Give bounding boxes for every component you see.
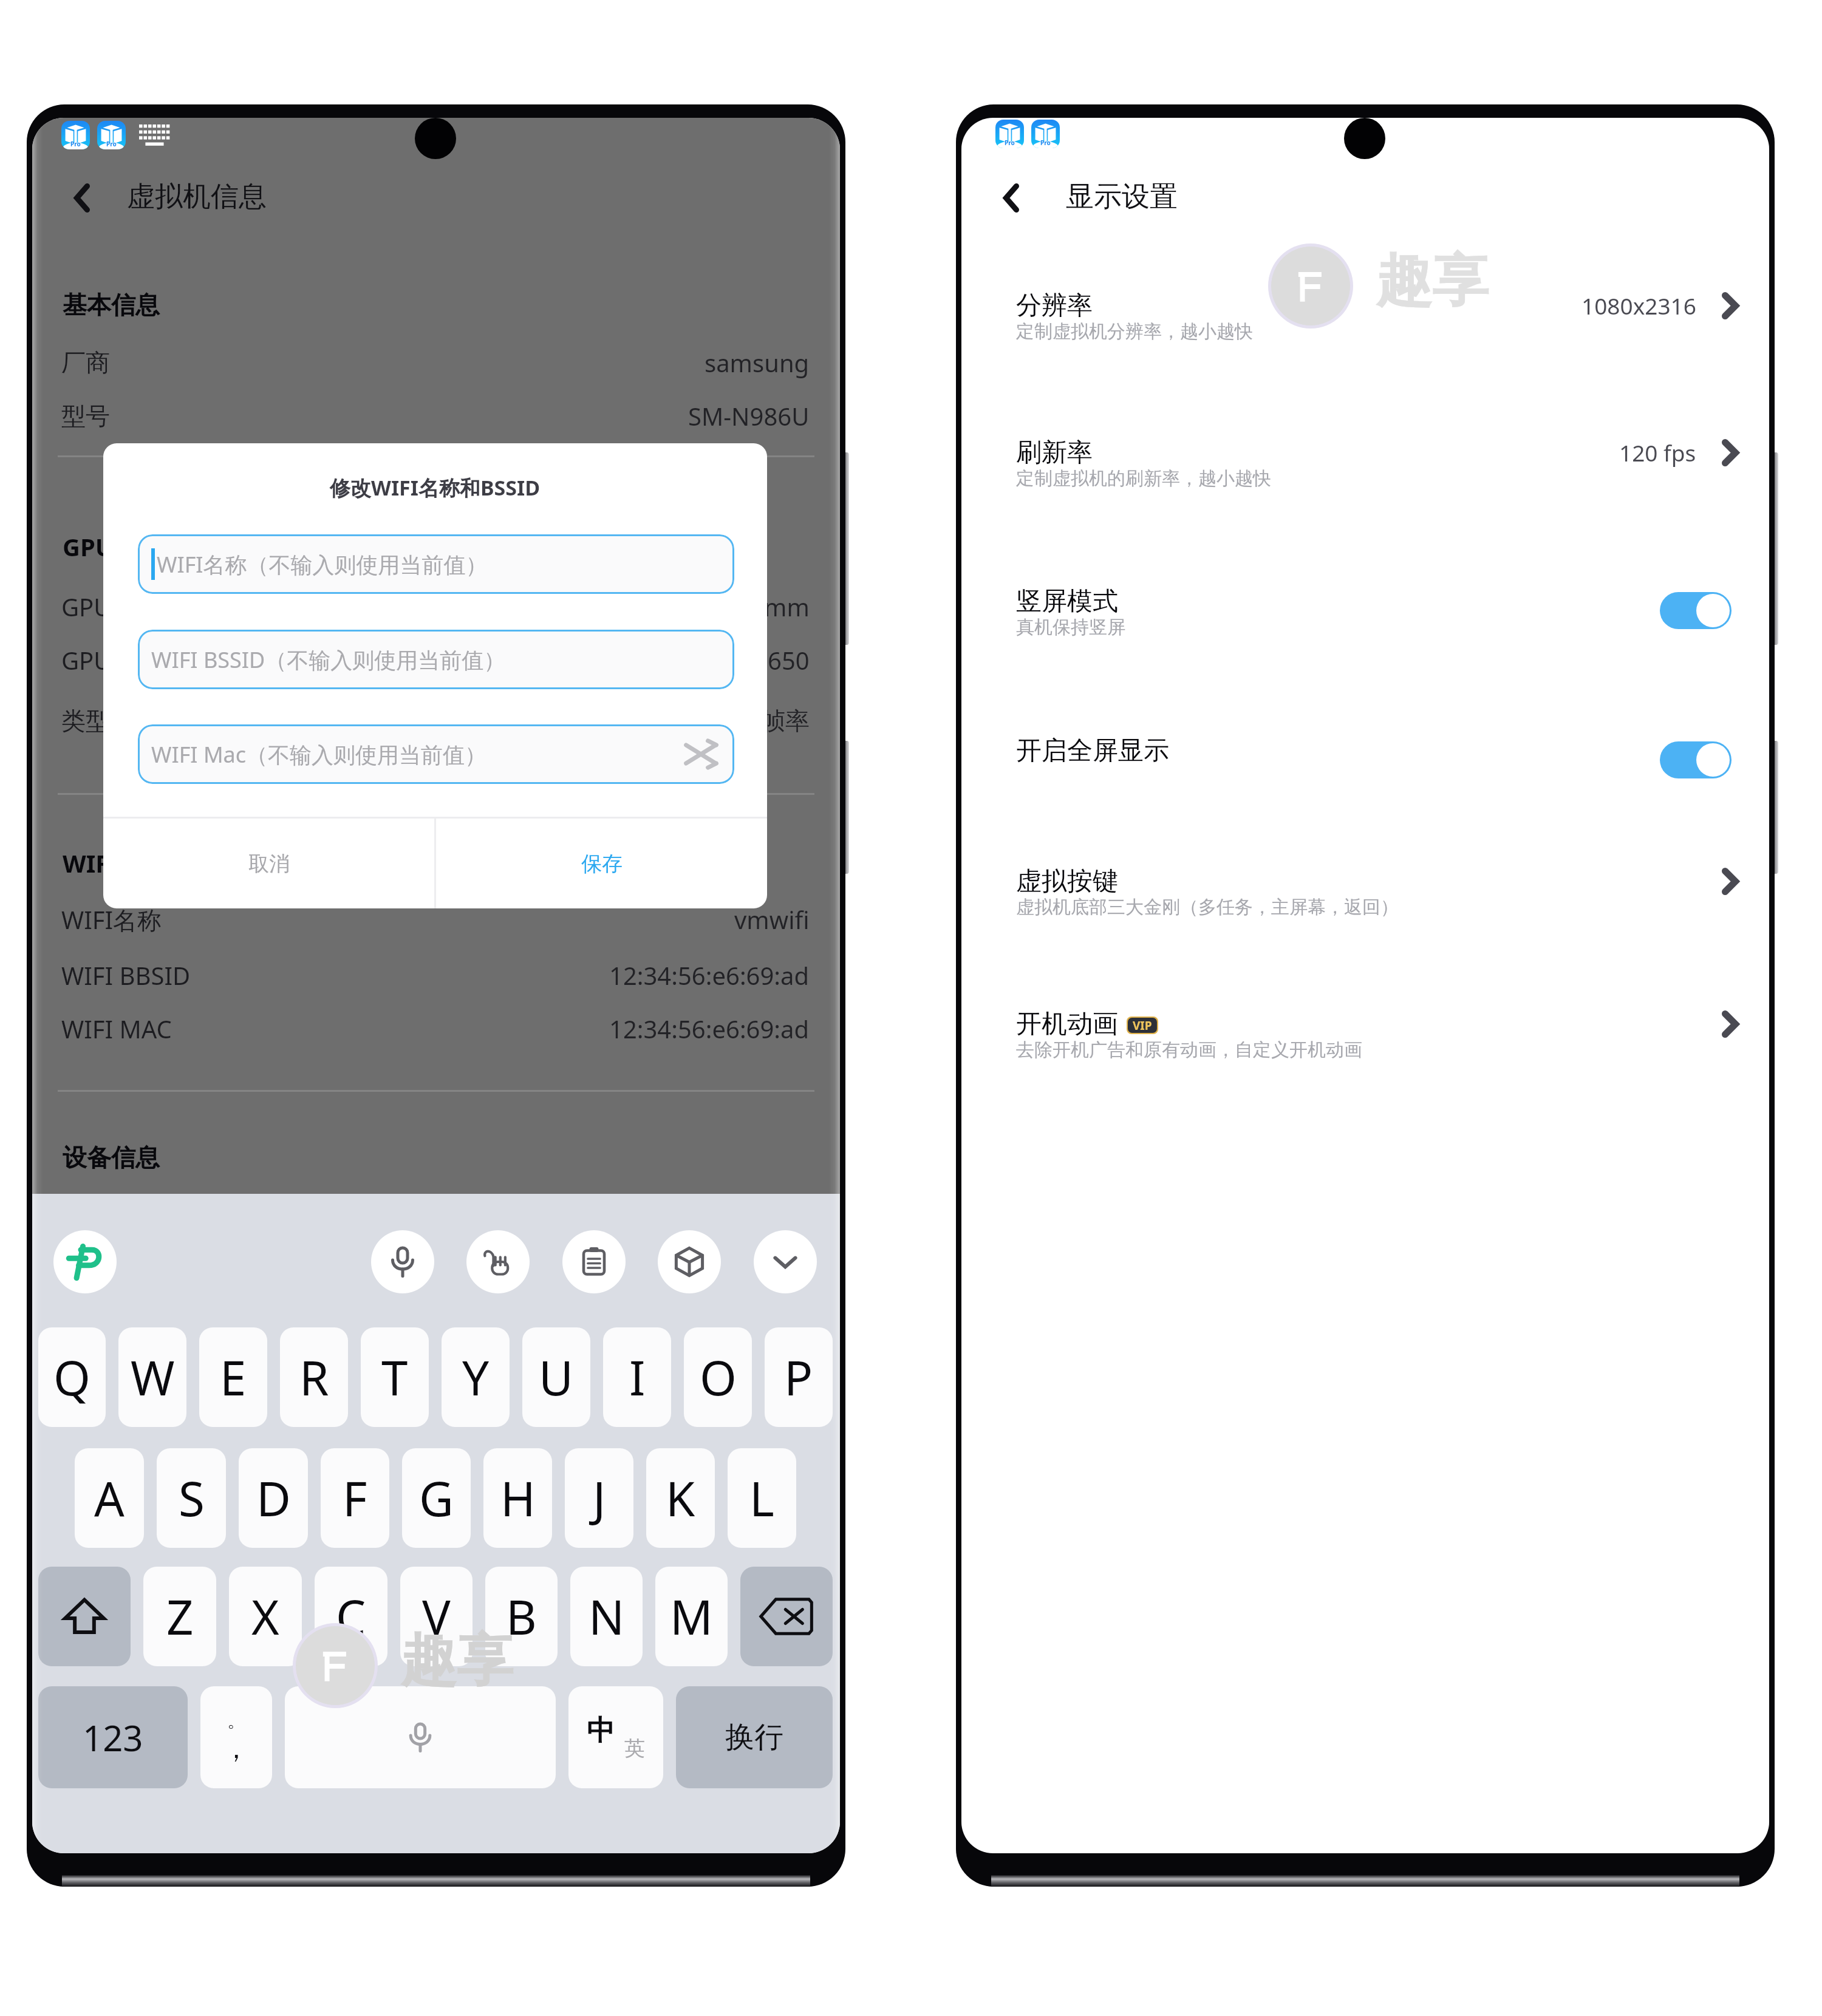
button[interactable]: F (321, 1448, 389, 1548)
button[interactable]: B (485, 1567, 558, 1666)
staticText: Y (462, 1345, 490, 1409)
staticText: O (700, 1345, 737, 1409)
staticText: WIFI信息 (63, 846, 167, 880)
button[interactable]: Back (982, 169, 1040, 227)
button[interactable]: M (655, 1567, 728, 1666)
button[interactable]: P (765, 1327, 833, 1427)
staticText: ， (223, 1732, 250, 1766)
button[interactable]: Toggle (1660, 592, 1732, 629)
button[interactable]: H (483, 1448, 552, 1548)
staticText: 12:34:56:e6:69:ad (609, 1012, 810, 1045)
staticText: WIFI MAC (61, 1012, 172, 1045)
button[interactable]: WIFI名称 (32, 896, 840, 943)
button[interactable]: Q (38, 1327, 106, 1427)
staticText: 定制虚拟机的刷新率，越小越快 (1016, 467, 1271, 490)
staticText: 设备信息 (63, 1142, 160, 1173)
staticText: Pro (1005, 138, 1015, 147)
button[interactable]: 虚拟按键 (961, 852, 1769, 910)
button[interactable]: Enter (676, 1686, 833, 1788)
button[interactable]: Clipboard (562, 1230, 626, 1293)
button[interactable]: Space (285, 1686, 556, 1788)
staticText: 开启全屏显示 (1016, 735, 1169, 767)
button[interactable]: Shift (38, 1567, 131, 1666)
staticText: 厂商 (61, 347, 110, 378)
button[interactable]: D (239, 1448, 308, 1548)
staticText: 1080x2316 (1581, 290, 1696, 321)
button[interactable]: 竖屏模式 (961, 572, 1769, 630)
staticText: 虚拟机信息 (127, 179, 267, 214)
staticText: J (593, 1466, 606, 1530)
staticText: Pro (1040, 138, 1051, 147)
button[interactable]: WIFI BSSID（不输入则使用当前值） (138, 630, 734, 689)
button[interactable]: 型号 (32, 392, 840, 440)
button[interactable]: A (75, 1448, 144, 1548)
button[interactable]: 分辨率 (961, 276, 1769, 335)
button[interactable]: WIFI BBSID (32, 952, 840, 999)
button[interactable]: R (280, 1327, 348, 1427)
button[interactable]: W (118, 1327, 186, 1427)
staticText: F (343, 1466, 367, 1530)
button[interactable]: GPU 型号 (32, 636, 840, 684)
button[interactable]: WIFI MAC (32, 1005, 840, 1052)
staticText: C (336, 1584, 366, 1649)
button[interactable]: 开启全屏显示 (961, 721, 1769, 780)
button[interactable]: Input method (53, 1230, 117, 1293)
button[interactable]: WIFI名称（不输入则使用当前值） (138, 534, 734, 594)
button[interactable]: WIFI Mac（不输入则使用当前值） (138, 724, 734, 784)
button[interactable]: I (603, 1327, 671, 1427)
button[interactable]: Back (53, 169, 111, 227)
button[interactable]: Numbers (38, 1686, 188, 1788)
button[interactable]: Handwriting (466, 1230, 530, 1293)
button[interactable]: Toggle (1660, 741, 1732, 778)
button[interactable]: Y (442, 1327, 510, 1427)
staticText: 定制虚拟机分辨率，越小越快 (1016, 320, 1253, 343)
button[interactable]: 类型 (32, 697, 840, 744)
staticText: 刷新率 (1016, 437, 1093, 469)
button[interactable]: GPU 厂商 (32, 583, 840, 630)
staticText: 开机动画 (1016, 1008, 1118, 1040)
staticText: WIFI名称（不输入则使用当前值） (157, 550, 488, 579)
button[interactable]: Z (143, 1567, 216, 1666)
button[interactable]: Punctuation (200, 1686, 272, 1788)
staticText: vmwifi (734, 903, 810, 936)
button[interactable]: Hide keyboard (754, 1230, 817, 1293)
button[interactable]: J (565, 1448, 633, 1548)
button[interactable]: X (229, 1567, 302, 1666)
button[interactable]: VMOS Pro app (97, 121, 126, 149)
button[interactable]: 刷新率 (961, 423, 1769, 482)
button[interactable]: L (728, 1448, 796, 1548)
button[interactable]: 厂商 (32, 339, 840, 386)
staticText: I (629, 1345, 646, 1409)
button[interactable]: 取消 (103, 819, 434, 908)
button[interactable]: C (315, 1567, 387, 1666)
button[interactable]: Voice input (371, 1230, 434, 1293)
button[interactable]: 开机动画 (961, 995, 1769, 1053)
button[interactable]: Backspace (740, 1567, 833, 1666)
button[interactable]: Stickers (658, 1230, 721, 1293)
button[interactable]: S (157, 1448, 226, 1548)
button[interactable]: O (684, 1327, 752, 1427)
staticText: SM-N986U (688, 400, 810, 432)
staticText: A (94, 1466, 125, 1530)
button[interactable]: K (646, 1448, 715, 1548)
staticText: 123 (83, 1714, 143, 1762)
staticText: 英 (624, 1735, 645, 1762)
staticText: X (251, 1584, 279, 1649)
button[interactable]: U (522, 1327, 590, 1427)
button[interactable]: VMOS Pro app (1031, 120, 1060, 148)
button[interactable]: V (400, 1567, 473, 1666)
button[interactable]: G (402, 1448, 471, 1548)
staticText: Pro (106, 140, 117, 148)
button[interactable]: VMOS Pro app (995, 120, 1024, 148)
button[interactable]: Language (568, 1686, 663, 1788)
button[interactable]: 保存 (436, 819, 767, 908)
staticText: GPU 厂商 (61, 590, 166, 624)
staticText: 型号 (61, 401, 110, 431)
button[interactable]: VMOS Pro app (61, 121, 90, 149)
button[interactable]: N (570, 1567, 643, 1666)
button[interactable]: E (199, 1327, 267, 1427)
staticText: T (381, 1345, 408, 1409)
staticText: 取消 (248, 851, 290, 877)
staticText: WIFI BSSID（不输入则使用当前值） (151, 645, 506, 675)
button[interactable]: T (361, 1327, 429, 1427)
